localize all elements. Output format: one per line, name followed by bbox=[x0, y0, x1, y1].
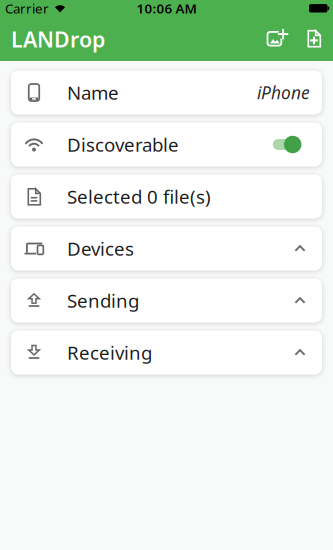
staticText: Devices bbox=[67, 236, 134, 261]
staticText: Selected 0 file(s) bbox=[67, 184, 211, 209]
button[interactable]: Add files bbox=[307, 19, 320, 59]
staticText: 10:06 AM bbox=[136, 0, 196, 17]
button[interactable]: Discoverable bbox=[273, 135, 302, 153]
button[interactable]: Devices bbox=[11, 226, 322, 270]
button[interactable]: Name bbox=[11, 70, 322, 114]
button[interactable]: Receiving bbox=[11, 330, 322, 374]
staticText: Carrier bbox=[5, 0, 49, 17]
staticText: LANDrop bbox=[11, 25, 105, 53]
button[interactable]: Sending bbox=[11, 278, 322, 322]
staticText: Name bbox=[67, 80, 119, 105]
staticText: iPhone bbox=[257, 81, 310, 104]
staticText: Discoverable bbox=[67, 132, 179, 157]
staticText: Sending bbox=[67, 288, 139, 313]
button[interactable]: Add photos bbox=[266, 19, 288, 59]
staticText: Receiving bbox=[67, 340, 152, 365]
